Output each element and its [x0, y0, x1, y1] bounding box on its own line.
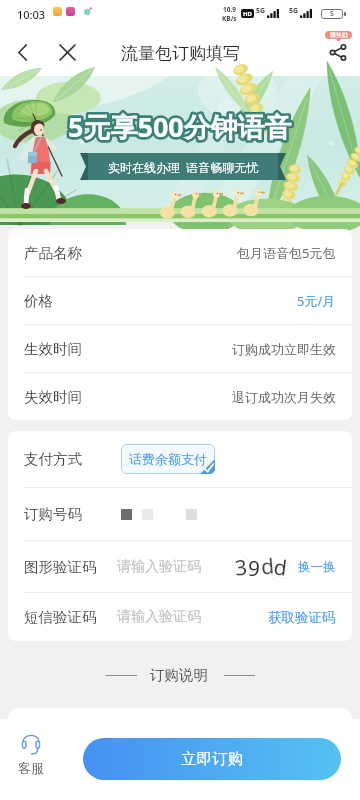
staticText: 立即订购 — [181, 749, 243, 769]
staticText: 支付方式 — [24, 450, 82, 468]
button[interactable]: 换一换 — [298, 559, 336, 575]
button[interactable]: 关闭 — [53, 38, 81, 66]
staticText: 10.9 — [223, 5, 236, 14]
staticText: 请输入验证码 — [117, 558, 201, 576]
staticText: 包月语音包5元包 — [237, 244, 336, 262]
staticText: 退订成功次月失效 — [232, 389, 336, 405]
staticText: 订购成功立即生效 — [232, 341, 336, 357]
staticText: 产品名称 — [24, 244, 82, 262]
staticText: 价格 — [24, 292, 53, 310]
staticText: HD — [243, 10, 252, 18]
staticText: 5元享500分钟语音 — [68, 108, 292, 145]
staticText: 失效时间 — [24, 388, 82, 406]
staticText: d — [260, 551, 275, 580]
staticText: KB/s — [222, 14, 237, 23]
button[interactable]: 立即订购 — [83, 738, 341, 780]
staticText: 订购说明 — [150, 666, 208, 684]
staticText: 话费余额支付 — [129, 451, 207, 467]
staticText: 请输入验证码 — [117, 608, 201, 626]
button[interactable]: 话费余额支付 — [121, 444, 215, 474]
staticText: 流量包订购填写 — [121, 43, 240, 64]
staticText: 5G — [289, 6, 299, 16]
staticText: 10:03 — [17, 7, 46, 22]
staticText: 客服 — [18, 760, 44, 776]
staticText: 3 — [234, 552, 249, 582]
staticText: 订购号码 — [24, 505, 82, 523]
staticText: 换一换 — [298, 559, 336, 575]
button[interactable]: 返回 — [8, 38, 36, 66]
staticText: 生效时间 — [24, 340, 82, 358]
staticText: 5 — [330, 9, 335, 19]
staticText: 5元/月 — [297, 292, 336, 310]
button[interactable]: 客服 — [10, 735, 52, 776]
button[interactable]: 分享 — [323, 38, 352, 67]
staticText: 实时在线办理 语音畅聊无忧 — [108, 159, 259, 175]
staticText: 赚奖励 — [330, 31, 348, 39]
staticText: 获取验证码 — [268, 609, 336, 626]
staticText: 图形验证码 — [24, 558, 97, 576]
staticText: 5G — [256, 6, 266, 16]
staticText: 5元享500分钟语音 — [68, 108, 292, 145]
staticText: 9 — [247, 553, 262, 582]
button[interactable]: 获取验证码 — [268, 609, 336, 626]
staticText: 短信验证码 — [24, 608, 97, 626]
staticText: d — [272, 552, 289, 582]
